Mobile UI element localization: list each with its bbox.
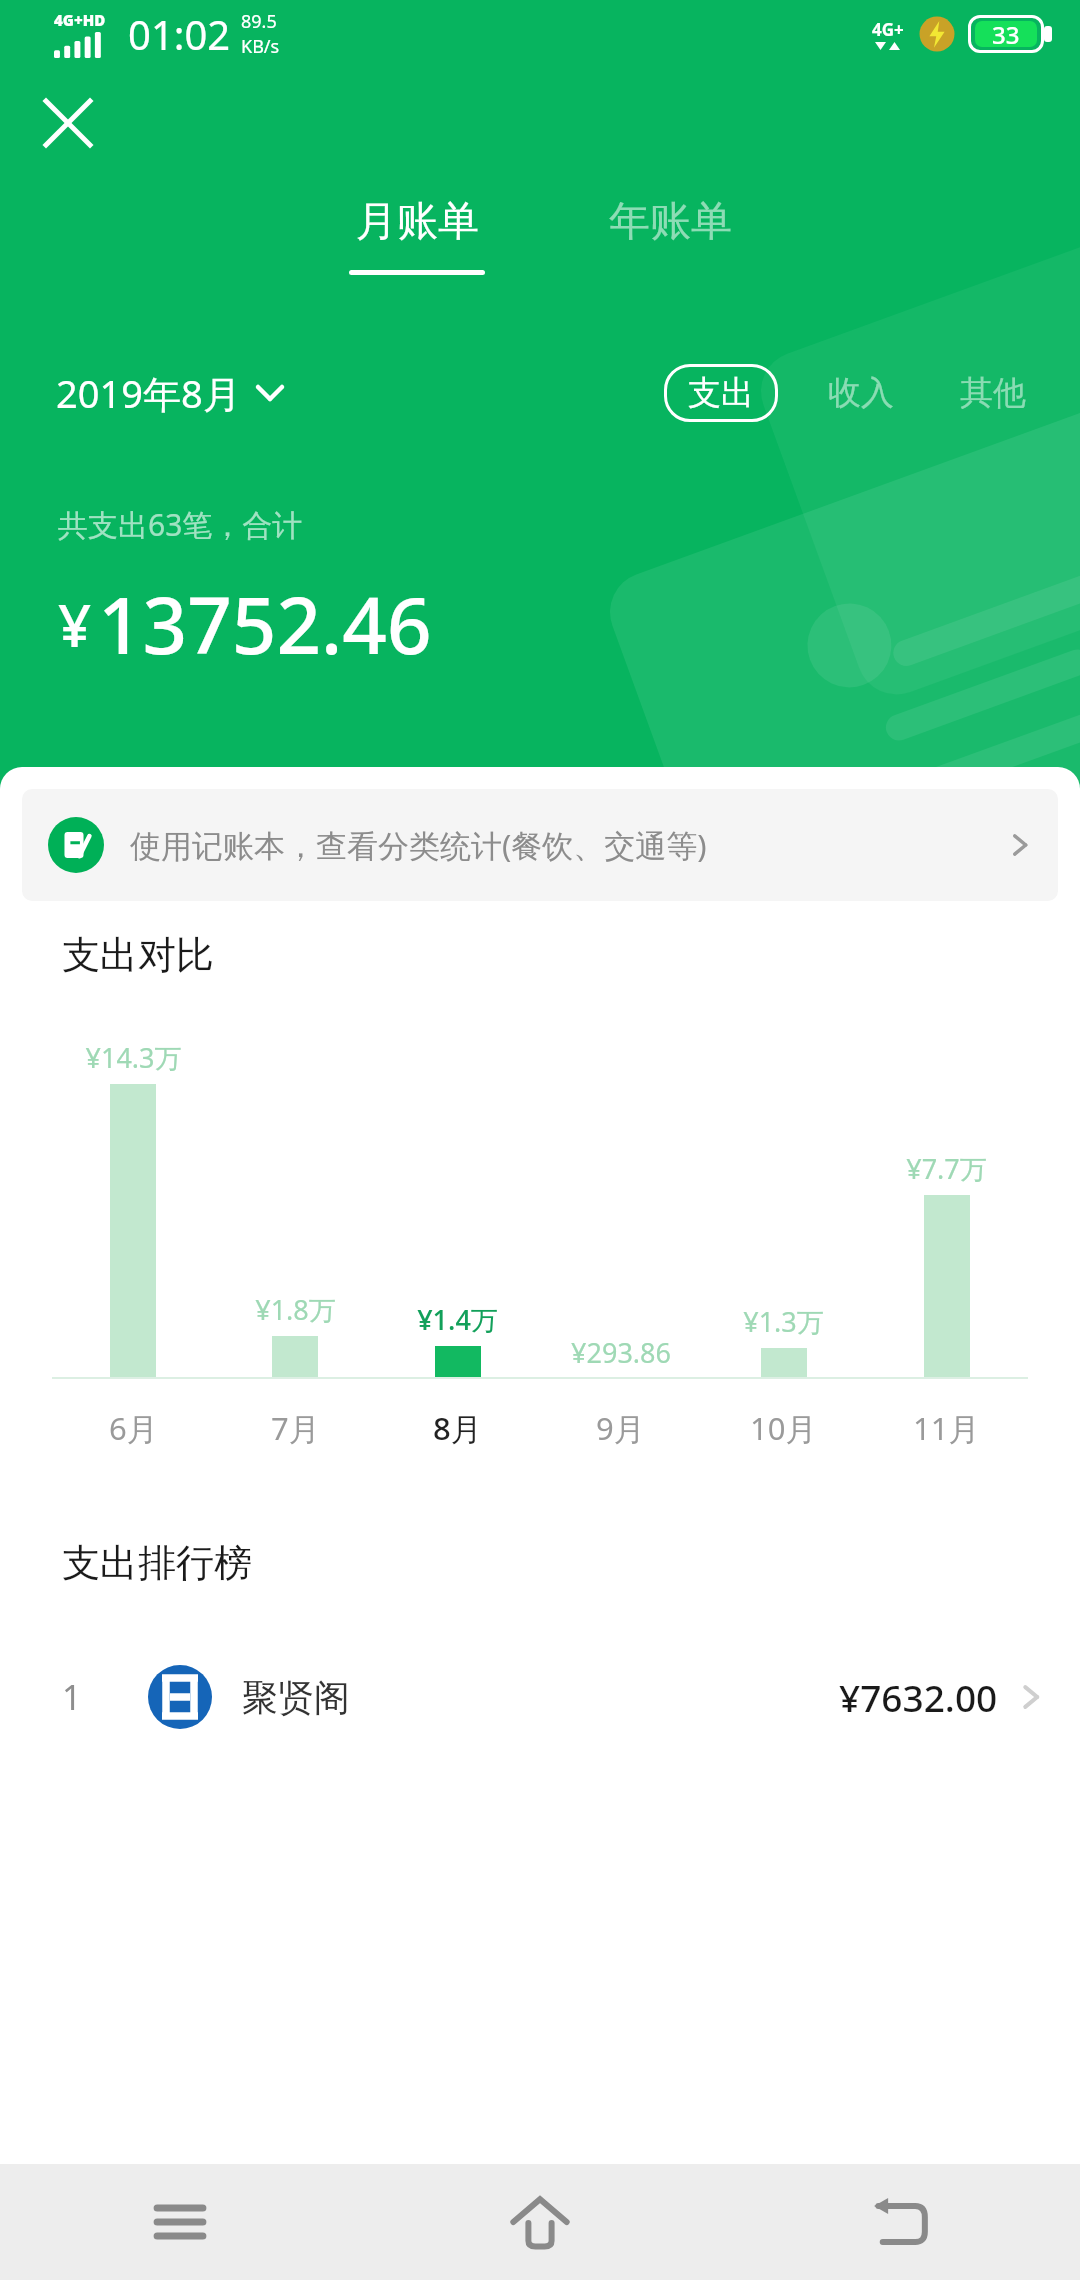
staticText: 月账单 [356,196,479,248]
button[interactable]: Close [20,75,116,171]
staticText: ¥14.3万 [85,1039,182,1076]
staticText: ¥7632.00 [839,1672,998,1722]
button[interactable]: ¥1.4万 [376,1301,539,1379]
staticText: 年账单 [609,196,732,248]
button[interactable]: ¥14.3万 [52,1039,214,1379]
button[interactable]: 支出 [664,364,778,422]
staticText: 支出对比 [62,931,214,979]
button[interactable]: ¥293.86 [539,1334,702,1379]
staticText: 6月 [109,1407,158,1449]
staticText: ¥ [58,585,92,664]
staticText: ¥293.86 [571,1334,671,1371]
staticText: 4G+HD [54,10,106,30]
staticText: 01:02 [128,7,231,61]
staticText: 8月 [433,1407,482,1449]
staticText: 4G+ [872,18,904,41]
staticText: 使用记账本，查看分类统计(餐饮、交通等) [130,824,1008,866]
staticText: ¥1.4万 [417,1301,498,1338]
button[interactable]: 使用记账本，查看分类统计(餐饮、交通等) [22,789,1058,901]
button[interactable]: Home [360,2164,720,2280]
staticText: 支出 [688,372,754,414]
button[interactable]: ¥1.8万 [214,1291,376,1379]
button[interactable]: Recent apps [0,2164,360,2280]
button[interactable]: 年账单 [583,188,758,256]
button[interactable]: ¥1.3万 [702,1303,865,1379]
staticText: ¥1.3万 [743,1303,824,1340]
staticText: 其他 [960,372,1026,414]
staticText: 聚贤阁 [242,1675,350,1720]
staticText: 9月 [596,1407,645,1449]
staticText: ¥7.7万 [906,1150,987,1187]
button[interactable]: Back [720,2164,1080,2280]
staticText: 89.5 [241,9,277,34]
staticText: 1 [62,1674,82,1720]
button[interactable]: ¥7.7万 [865,1150,1028,1379]
button[interactable]: 收入 [820,362,902,424]
staticText: 支出排行榜 [62,1539,252,1587]
staticText: 2019年8月 [56,367,241,419]
button[interactable]: 月账单 [323,188,511,283]
staticText: 10月 [750,1407,817,1449]
staticText: 收入 [828,372,894,414]
staticText: ¥1.8万 [255,1291,336,1328]
staticText: 共支出63笔，合计 [58,504,303,545]
staticText: 13752.46 [98,571,432,677]
button[interactable]: 2019年8月 [56,367,283,419]
button[interactable]: 其他 [952,362,1034,424]
staticText: KB/s [241,34,280,59]
staticText: 33 [992,18,1020,51]
button[interactable]: 1 [0,1651,1080,1749]
staticText: 7月 [271,1407,320,1449]
staticText: 11月 [913,1407,980,1449]
